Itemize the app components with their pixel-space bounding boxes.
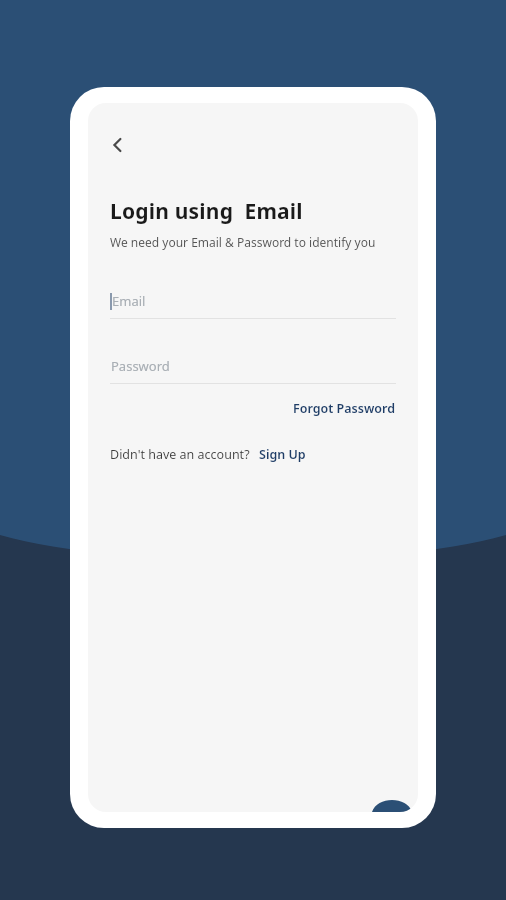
staticText: Email (112, 292, 146, 310)
button[interactable]: Password (110, 357, 396, 384)
staticText: Password (111, 357, 170, 375)
staticText: We need your Email & Password to identif… (110, 234, 376, 250)
button[interactable]: Sign Up (259, 443, 306, 466)
button[interactable]: Forgot Password (293, 396, 396, 421)
staticText: Login using Email (110, 197, 303, 226)
button[interactable]: Back (98, 125, 138, 165)
staticText: Didn't have an account? (110, 446, 250, 463)
button[interactable]: Email (110, 292, 396, 319)
